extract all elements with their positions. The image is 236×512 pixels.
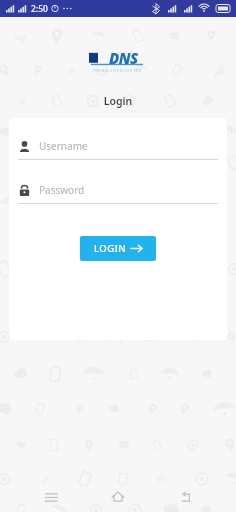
button[interactable]: Recent apps bbox=[34, 482, 68, 512]
staticText: Username bbox=[39, 139, 88, 153]
staticText: THE SOLUTION FOR YOU bbox=[93, 69, 143, 73]
button[interactable]: Back bbox=[169, 482, 203, 512]
button[interactable]: Home bbox=[101, 482, 135, 512]
staticText: Login bbox=[0, 94, 236, 108]
staticText: DNS bbox=[109, 48, 138, 68]
button[interactable]: Password bbox=[18, 183, 218, 204]
staticText: LOGIN bbox=[94, 242, 126, 255]
button[interactable]: LOGIN bbox=[80, 236, 156, 261]
button[interactable]: Username bbox=[18, 139, 218, 160]
staticText: Password bbox=[39, 183, 85, 197]
staticText: 2:50 bbox=[31, 3, 48, 15]
